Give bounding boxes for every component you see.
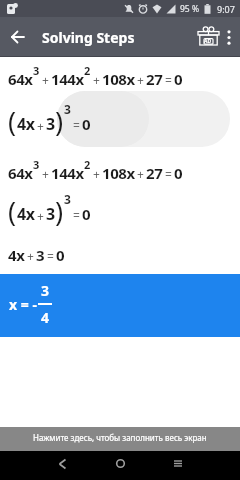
staticText: Нажмите здесь, чтобы заполнить весь экра… bbox=[33, 432, 207, 443]
staticText: 0 bbox=[82, 114, 91, 134]
staticText: 0 bbox=[56, 245, 65, 265]
staticText: 64x bbox=[8, 163, 33, 183]
staticText: + bbox=[37, 118, 44, 134]
button[interactable] bbox=[42, 449, 82, 478]
staticText: 4x bbox=[17, 113, 35, 135]
staticText: + bbox=[137, 72, 144, 88]
staticText: 27 bbox=[146, 163, 163, 183]
staticText: 3 bbox=[36, 245, 45, 265]
staticText: = bbox=[73, 207, 80, 223]
staticText: 144x bbox=[51, 69, 84, 89]
button[interactable] bbox=[158, 449, 198, 478]
staticText: + bbox=[42, 166, 49, 182]
button[interactable] bbox=[6, 25, 30, 49]
staticText: 0 bbox=[174, 163, 183, 183]
staticText: 3 bbox=[41, 281, 50, 300]
staticText: 9:07 bbox=[217, 3, 235, 15]
button[interactable]: x = - bbox=[0, 274, 240, 337]
staticText: 95 % bbox=[180, 3, 199, 15]
staticText: 0 bbox=[82, 204, 91, 224]
staticText: 2 bbox=[84, 157, 91, 172]
staticText: 4x bbox=[17, 203, 35, 225]
button[interactable] bbox=[100, 449, 140, 478]
staticText: + bbox=[137, 166, 144, 182]
staticText: + bbox=[37, 208, 44, 224]
staticText: ) bbox=[55, 103, 64, 140]
staticText: AD bbox=[204, 38, 212, 45]
staticText: = bbox=[73, 117, 80, 133]
staticText: = bbox=[165, 166, 172, 182]
button[interactable] bbox=[218, 20, 240, 54]
staticText: ( bbox=[8, 103, 17, 140]
staticText: 4x bbox=[8, 245, 25, 265]
button[interactable]: AD bbox=[195, 20, 221, 54]
staticText: + bbox=[93, 166, 100, 182]
staticText: 27 bbox=[146, 69, 163, 89]
staticText: 108x bbox=[102, 69, 135, 89]
staticText: 4 bbox=[41, 308, 50, 327]
staticText: 3 bbox=[64, 101, 71, 117]
staticText: 64x bbox=[8, 69, 33, 89]
staticText: 3 bbox=[46, 203, 55, 225]
staticText: 3 bbox=[33, 63, 40, 78]
staticText: + bbox=[93, 72, 100, 88]
staticText: 108x bbox=[102, 163, 135, 183]
staticText: 3 bbox=[64, 191, 71, 207]
staticText: 0 bbox=[174, 69, 183, 89]
staticText: Solving Steps bbox=[42, 28, 135, 47]
staticText: 3 bbox=[33, 157, 40, 172]
staticText: x = - bbox=[9, 295, 37, 314]
staticText: 3 bbox=[46, 113, 55, 135]
staticText: + bbox=[42, 72, 49, 88]
staticText: = bbox=[47, 248, 54, 264]
button[interactable]: Нажмите здесь, чтобы заполнить весь экра… bbox=[0, 427, 240, 451]
staticText: ( bbox=[8, 193, 17, 230]
staticText: 2 bbox=[84, 63, 91, 78]
staticText: 144x bbox=[51, 163, 84, 183]
staticText: + bbox=[27, 248, 34, 264]
staticText: = bbox=[165, 72, 172, 88]
staticText: ) bbox=[55, 193, 64, 230]
